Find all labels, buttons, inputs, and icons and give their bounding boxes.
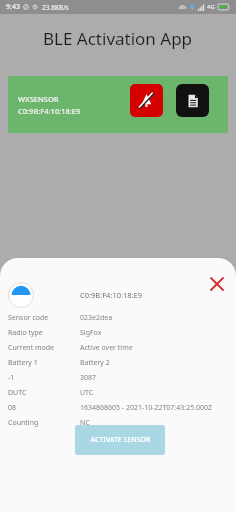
- staticText: 023e2dea: [80, 313, 113, 323]
- staticText: Counting: [8, 418, 39, 428]
- staticText: 23.8KB/s: [42, 3, 69, 12]
- staticText: Sensor code: [8, 313, 49, 323]
- staticText: UTC: [80, 388, 94, 398]
- staticText: WXSENSOR: [18, 94, 59, 104]
- button[interactable]: Disconnect sensor: [130, 84, 163, 117]
- staticText: BLE Activation App: [43, 27, 193, 50]
- staticText: 3087: [80, 373, 97, 383]
- staticText: DUTC: [8, 388, 27, 398]
- staticText: ACTIVATE SENSOR: [90, 435, 151, 445]
- staticText: Radio type: [8, 328, 43, 338]
- staticText: 9:43: [6, 2, 20, 12]
- staticText: Active over time: [80, 343, 133, 353]
- staticText: -1: [8, 373, 15, 383]
- button[interactable]: Close: [205, 272, 229, 296]
- staticText: SigFox: [80, 328, 102, 338]
- staticText: Battery 1: [8, 358, 38, 368]
- staticText: C0:9B:F4:10:18:E9: [80, 290, 143, 300]
- staticText: C0:9B:F4:10:18:E9: [18, 106, 81, 116]
- staticText: Battery 2: [80, 358, 110, 368]
- staticText: 08: [8, 403, 17, 413]
- button[interactable]: WXSENSOR: [8, 76, 228, 133]
- button[interactable]: Sensor log: [176, 84, 209, 117]
- staticText: 4G: [207, 3, 215, 11]
- button[interactable]: ACTIVATE SENSOR: [75, 425, 165, 455]
- staticText: NC: [80, 418, 90, 428]
- staticText: Current mode: [8, 343, 55, 353]
- staticText: 1634868605 - 2021-10-22T07:43:25.000Z: [80, 403, 213, 413]
